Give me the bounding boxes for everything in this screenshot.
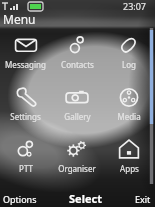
button[interactable]: Log bbox=[103, 27, 155, 79]
button[interactable]: Options bbox=[3, 193, 37, 205]
button[interactable]: Messaging bbox=[0, 27, 51, 79]
button[interactable]: Apps bbox=[103, 131, 155, 183]
staticText: Log bbox=[122, 59, 136, 70]
button[interactable]: Select bbox=[69, 191, 102, 206]
staticText: Menu bbox=[3, 11, 36, 27]
staticText: Settings bbox=[10, 111, 41, 122]
staticText: Organiser bbox=[58, 163, 96, 174]
button[interactable]: Organiser bbox=[51, 131, 103, 183]
staticText: Messaging bbox=[5, 59, 46, 70]
staticText: PTT bbox=[19, 163, 33, 174]
button[interactable]: Gallery bbox=[51, 79, 103, 131]
staticText: Apps bbox=[120, 163, 139, 174]
button[interactable]: Settings bbox=[0, 79, 51, 131]
button[interactable]: Exit bbox=[135, 193, 151, 205]
staticText: 23:07 bbox=[123, 0, 147, 12]
button[interactable]: Contacts bbox=[51, 27, 103, 79]
button[interactable]: PTT bbox=[0, 131, 51, 183]
staticText: Gallery bbox=[64, 111, 91, 122]
button[interactable]: Media bbox=[103, 79, 155, 131]
staticText: Contacts bbox=[61, 59, 94, 70]
staticText: Media bbox=[117, 111, 141, 122]
